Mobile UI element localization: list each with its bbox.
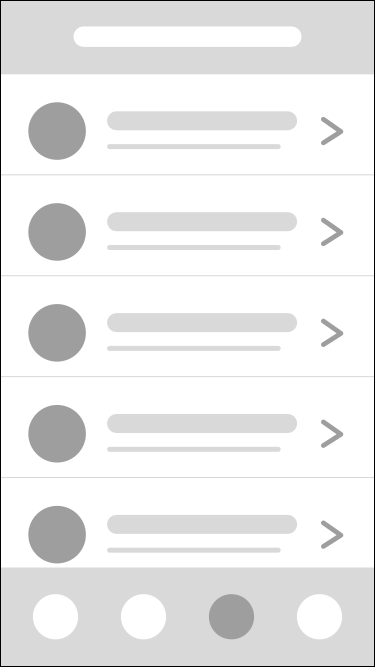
button[interactable]: Search	[73, 26, 301, 47]
button[interactable]: Tab 3, selected	[187, 567, 275, 666]
button[interactable]: Tab 1	[11, 567, 99, 666]
button[interactable]: Item 5	[1, 478, 374, 578]
button[interactable]: Item 4	[1, 377, 374, 477]
button[interactable]: Item 1	[1, 75, 374, 174]
button[interactable]: Item 2	[1, 176, 374, 275]
button[interactable]: Tab 4	[275, 567, 363, 666]
button[interactable]: Tab 2	[99, 567, 187, 666]
button[interactable]: Item 3	[1, 276, 374, 376]
